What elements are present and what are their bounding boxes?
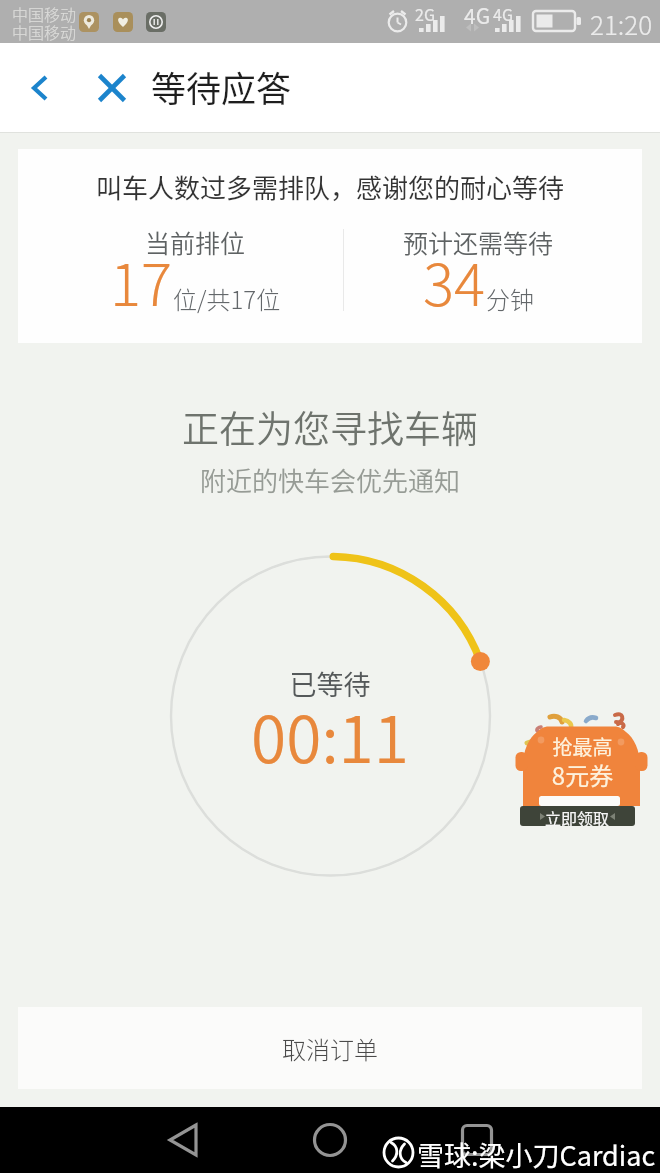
staticText: 分钟 — [486, 281, 534, 316]
staticText: 4G — [493, 2, 513, 25]
staticText: 中国移动 — [12, 2, 77, 25]
staticText: 附近的快车会优先通知 — [0, 461, 660, 499]
staticText: 取消订单 — [282, 1031, 378, 1066]
staticText: 21:20 — [590, 5, 653, 43]
button[interactable]: Claim coupon — [515, 700, 650, 835]
staticText: 已等待 — [0, 664, 660, 703]
staticText: 8元券 — [515, 757, 650, 792]
button[interactable]: Close — [79, 43, 145, 132]
staticText: 34 — [423, 239, 486, 323]
staticText: 叫车人数过多需排队，感谢您的耐心等待 — [18, 168, 642, 206]
staticText: 雪球:梁小刀Cardiac — [417, 1135, 656, 1173]
staticText: 等待应答 — [151, 61, 292, 112]
staticText: 中国移动 — [12, 20, 77, 43]
button[interactable]: Back — [8, 43, 74, 132]
staticText: 预计还需等待 — [338, 224, 618, 260]
staticText: 当前排位 — [55, 224, 335, 260]
button[interactable]: Recent apps — [436, 1107, 518, 1173]
button[interactable]: 取消订单 — [18, 1007, 642, 1089]
button[interactable]: Home — [289, 1107, 371, 1173]
staticText: 位/共17位 — [173, 281, 281, 316]
staticText: 2G — [415, 2, 435, 25]
staticText: 立即领取 — [545, 806, 610, 826]
staticText: 抢最高 — [515, 732, 650, 761]
staticText: 正在为您寻找车辆 — [0, 400, 660, 454]
button[interactable]: Back — [143, 1107, 225, 1173]
staticText: 17 — [110, 239, 173, 323]
staticText: 4G — [464, 0, 491, 30]
staticText: 00:11 — [0, 689, 660, 782]
